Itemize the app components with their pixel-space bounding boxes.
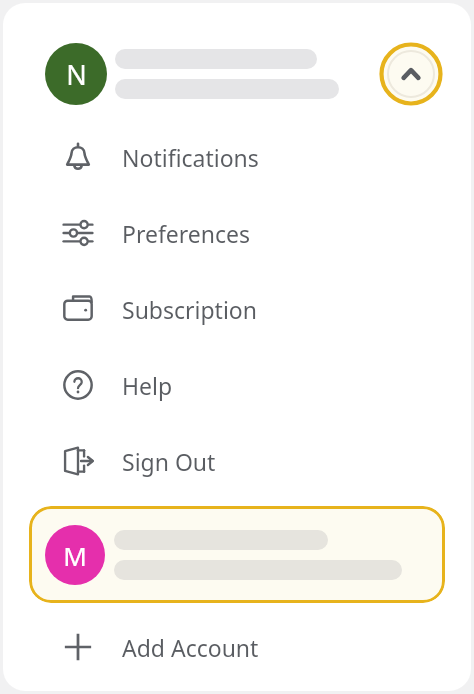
button[interactable]: Sign Out <box>3 423 471 499</box>
button[interactable]: Help <box>3 347 471 423</box>
staticText: Help <box>122 370 173 401</box>
staticText: Sign Out <box>122 446 216 477</box>
button[interactable]: Subscription <box>3 271 471 347</box>
button[interactable]: Preferences <box>3 195 471 271</box>
button[interactable]: N <box>3 40 471 108</box>
staticText: M <box>63 538 87 573</box>
button[interactable]: Add Account <box>3 609 471 685</box>
staticText: Add Account <box>122 632 259 663</box>
staticText: Preferences <box>122 218 251 249</box>
button[interactable]: Collapse account list <box>379 42 443 106</box>
staticText: Notifications <box>122 142 259 173</box>
staticText: N <box>66 56 87 93</box>
button[interactable]: Notifications <box>3 119 471 195</box>
staticText: Subscription <box>122 294 257 325</box>
button[interactable]: M <box>29 506 445 603</box>
